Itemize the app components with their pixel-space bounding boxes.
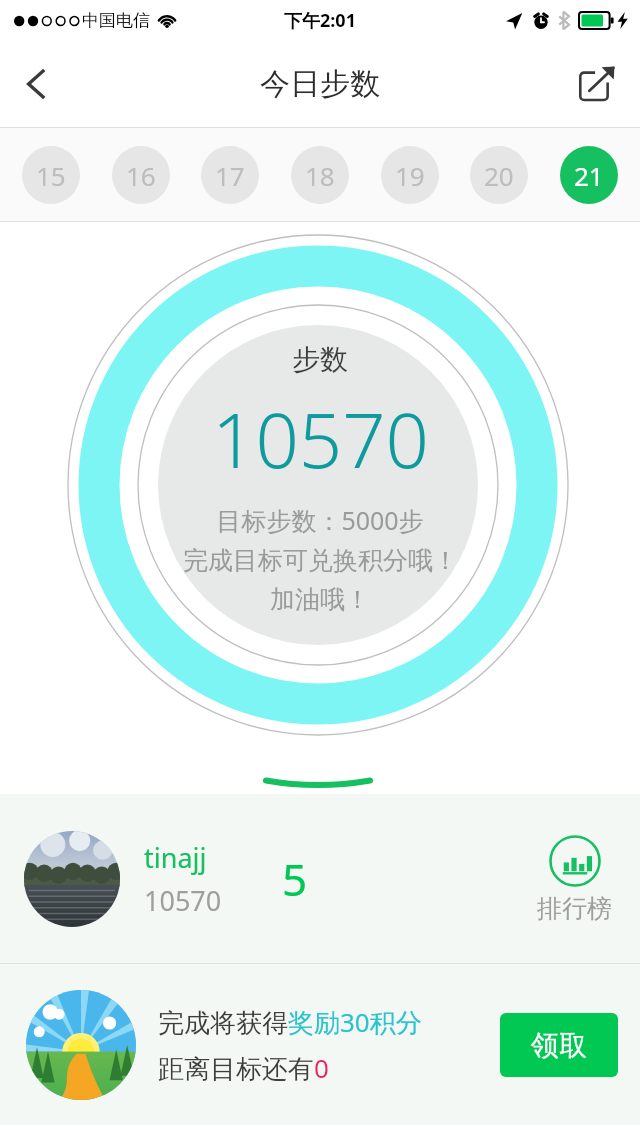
button[interactable]: 20	[470, 146, 528, 204]
staticText: 10570	[212, 387, 429, 491]
button[interactable]: 领取	[500, 1013, 618, 1077]
staticText: 10570	[144, 882, 222, 919]
staticText: 完成将获得奖励30积分	[158, 1004, 422, 1040]
staticText: 目标步数：5000步	[216, 503, 424, 537]
staticText: 加油哦！	[270, 584, 370, 615]
staticText: 中国电信	[82, 10, 150, 31]
staticText: 15	[36, 158, 66, 193]
button[interactable]: 19	[381, 146, 439, 204]
staticText: 下午2:01	[284, 8, 356, 33]
staticText: 距离目标还有0	[158, 1050, 329, 1086]
button[interactable]: 21	[560, 146, 618, 204]
staticText: 今日步数	[260, 65, 380, 103]
button[interactable]: 17	[201, 146, 259, 204]
button[interactable]: 15	[22, 146, 80, 204]
staticText: 排行榜	[537, 893, 612, 924]
staticText: 21	[574, 158, 604, 193]
staticText: 18	[305, 158, 335, 193]
staticText: 17	[215, 158, 245, 193]
staticText: 20	[484, 158, 514, 193]
staticText: 16	[126, 158, 156, 193]
button[interactable]: 18	[291, 146, 349, 204]
staticText: 19	[395, 158, 425, 193]
button[interactable]: 16	[112, 146, 170, 204]
staticText: tinajj	[144, 839, 207, 876]
staticText: 步数	[292, 342, 348, 377]
button[interactable]: Share	[566, 53, 628, 115]
staticText: 领取	[531, 1028, 587, 1063]
button[interactable]: 排行榜	[533, 831, 616, 928]
staticText: 5	[282, 849, 308, 909]
button[interactable]: tinajj	[0, 794, 640, 964]
staticText: 完成目标可兑换积分哦！	[183, 545, 458, 576]
button[interactable]: Back	[6, 53, 68, 115]
